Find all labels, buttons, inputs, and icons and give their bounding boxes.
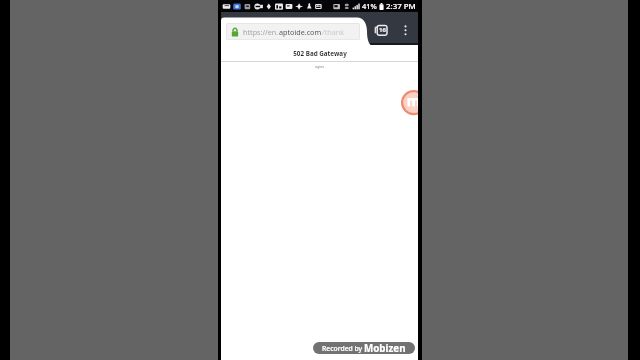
staticText: nginx bbox=[315, 64, 324, 69]
staticText: Mobizen bbox=[364, 342, 406, 354]
staticText: 502 Bad Gateway bbox=[293, 49, 347, 58]
button[interactable]: https://en. bbox=[226, 23, 360, 40]
staticText: 41% bbox=[362, 1, 377, 11]
button[interactable]: Recorded by bbox=[313, 342, 415, 354]
button[interactable]: Switch tabs, 16 open bbox=[374, 23, 389, 37]
staticText: /thank bbox=[322, 27, 345, 37]
staticText: https://en. bbox=[243, 27, 279, 37]
staticText: 16 bbox=[379, 26, 386, 34]
staticText: Recorded by bbox=[322, 344, 364, 353]
button[interactable]: More options bbox=[400, 24, 411, 37]
staticText: 2:37 PM bbox=[386, 1, 416, 12]
staticText: aptoide.com bbox=[279, 27, 322, 37]
